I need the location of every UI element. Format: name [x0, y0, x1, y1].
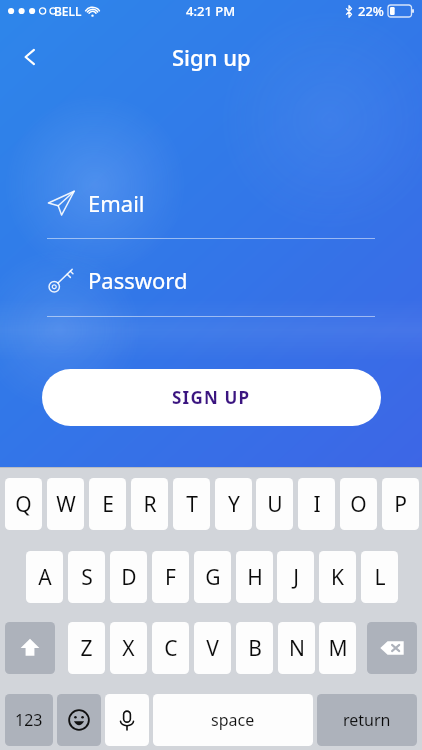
button[interactable]: S — [68, 551, 105, 603]
button[interactable]: N — [278, 622, 315, 674]
button[interactable]: O — [340, 478, 377, 530]
staticText: F — [165, 563, 176, 592]
button[interactable]: Back — [8, 35, 52, 79]
button[interactable]: J — [277, 551, 314, 603]
staticText: J — [293, 563, 299, 592]
staticText: M — [328, 634, 348, 663]
staticText: BELL — [54, 3, 82, 19]
button[interactable]: A — [26, 551, 63, 603]
button[interactable]: Email — [42, 178, 380, 228]
button[interactable]: H — [236, 551, 273, 603]
button[interactable]: E — [89, 478, 126, 530]
button[interactable]: C — [152, 622, 189, 674]
staticText: G — [205, 563, 221, 592]
staticText: V — [206, 634, 219, 663]
button[interactable]: G — [194, 551, 231, 603]
button[interactable]: F — [152, 551, 189, 603]
staticText: Sign up — [172, 42, 251, 72]
button[interactable]: K — [319, 551, 356, 603]
staticText: T — [186, 490, 198, 519]
staticText: 123 — [15, 709, 43, 731]
button[interactable]: X — [110, 622, 147, 674]
button[interactable]: return — [317, 694, 417, 746]
button[interactable]: V — [194, 622, 231, 674]
staticText: O — [350, 490, 367, 519]
staticText: A — [38, 563, 52, 592]
staticText: Y — [228, 490, 240, 519]
staticText: space — [211, 709, 255, 731]
button[interactable]: Password — [42, 255, 380, 305]
staticText: R — [143, 490, 157, 519]
button[interactable]: space — [153, 694, 313, 746]
button[interactable]: W — [47, 478, 84, 530]
staticText: P — [394, 490, 407, 519]
button[interactable]: Backspace — [367, 622, 417, 674]
button[interactable]: P — [382, 478, 419, 530]
staticText: U — [267, 490, 283, 519]
button[interactable]: T — [173, 478, 210, 530]
button[interactable]: Shift — [5, 622, 55, 674]
button[interactable]: SIGN UP — [42, 369, 381, 426]
staticText: return — [343, 709, 391, 731]
staticText: X — [122, 634, 135, 663]
staticText: D — [121, 563, 137, 592]
button[interactable]: Dictate — [105, 694, 149, 746]
staticText: E — [102, 490, 114, 519]
button[interactable]: U — [256, 478, 293, 530]
staticText: S — [81, 563, 93, 592]
staticText: I — [313, 490, 321, 519]
button[interactable]: Emoji — [57, 694, 101, 746]
staticText: 4:21 PM — [186, 2, 236, 20]
staticText: B — [248, 634, 262, 663]
button[interactable]: 123 — [5, 694, 53, 746]
button[interactable]: I — [298, 478, 335, 530]
staticText: Email — [88, 188, 145, 218]
staticText: H — [247, 563, 263, 592]
staticText: 22% — [358, 2, 384, 20]
button[interactable]: R — [131, 478, 168, 530]
staticText: Z — [80, 634, 93, 663]
button[interactable]: Z — [68, 622, 105, 674]
button[interactable]: Y — [215, 478, 252, 530]
staticText: W — [56, 490, 76, 519]
staticText: C — [164, 634, 178, 663]
button[interactable]: Q — [5, 478, 42, 530]
staticText: Q — [15, 490, 32, 519]
button[interactable]: D — [110, 551, 147, 603]
button[interactable]: M — [319, 622, 356, 674]
button[interactable]: B — [236, 622, 273, 674]
staticText: SIGN UP — [172, 386, 251, 409]
staticText: L — [374, 563, 386, 592]
staticText: K — [331, 563, 344, 592]
staticText: Password — [88, 265, 188, 295]
button[interactable]: L — [361, 551, 398, 603]
staticText: N — [289, 634, 305, 663]
